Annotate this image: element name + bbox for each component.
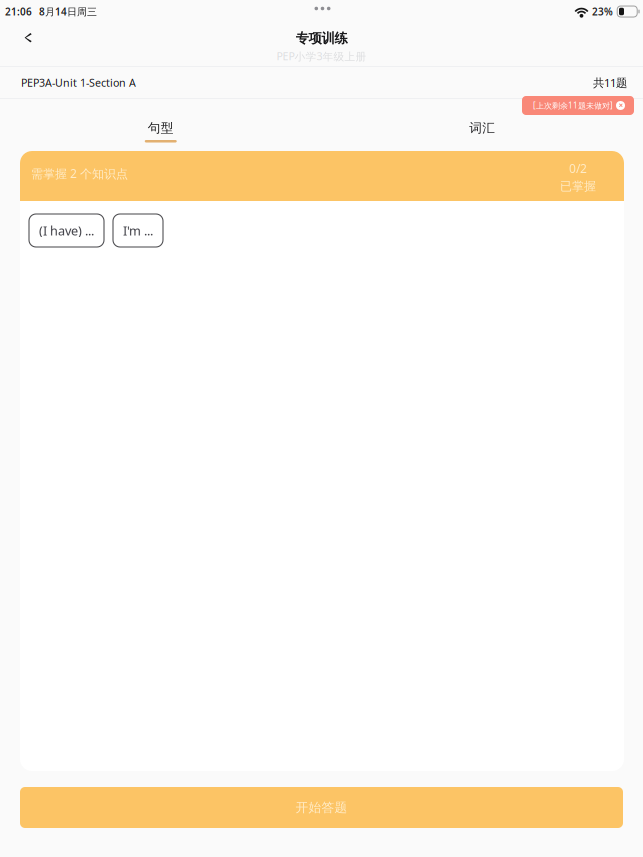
button[interactable]: (I have) ... (29, 214, 104, 247)
staticText: 专项训练 (295, 30, 347, 47)
staticText: 开始答题 (295, 799, 347, 815)
staticText: [上次剩余11题未做对] (533, 100, 613, 111)
button[interactable]: I'm ... (113, 214, 163, 247)
staticText: 0/2 (569, 160, 587, 177)
staticText: I'm ... (123, 222, 153, 239)
button[interactable]: [上次剩余11题未做对] (522, 96, 634, 115)
staticText: PEP小学3年级上册 (276, 49, 366, 63)
button[interactable]: 句型 (0, 99, 321, 151)
staticText: 词汇 (469, 120, 495, 136)
staticText: PEP3A-Unit 1-Section A (21, 75, 136, 90)
staticText: (I have) ... (39, 222, 94, 239)
button[interactable]: 返回 (6, 27, 50, 49)
staticText: 句型 (148, 120, 174, 136)
button[interactable]: 开始答题 (20, 787, 623, 828)
button[interactable]: 词汇 (321, 99, 643, 151)
staticText: 23% (592, 5, 613, 18)
staticText: 需掌握 2 个知识点 (31, 165, 128, 182)
staticText: 21:06 (5, 5, 32, 18)
staticText: 共11题 (593, 75, 627, 90)
staticText: 已掌握 (560, 179, 596, 194)
staticText: 8月14日周三 (39, 5, 97, 18)
